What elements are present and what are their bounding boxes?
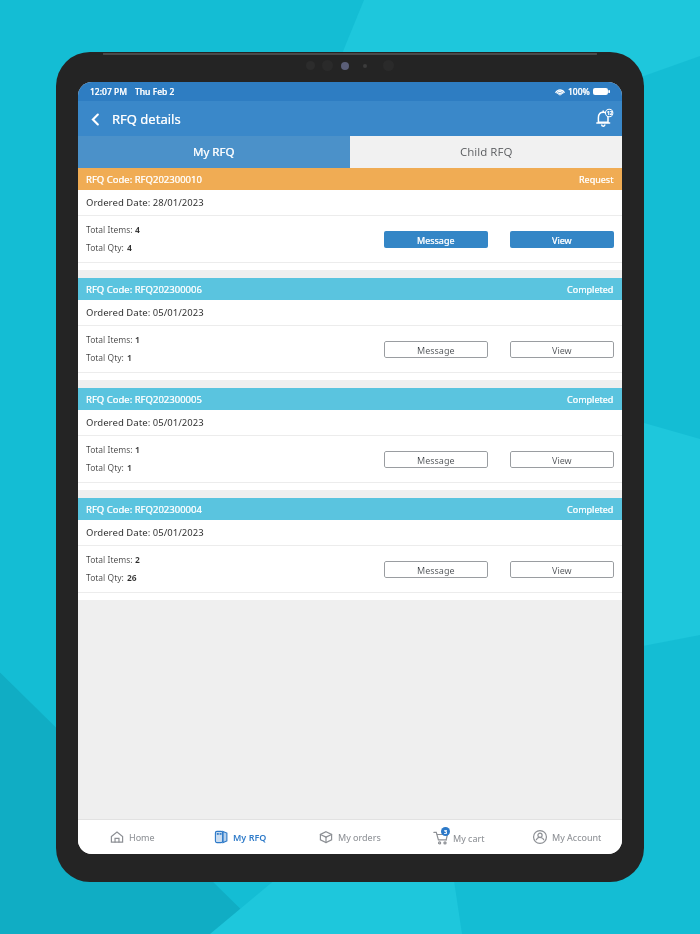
staticText: My RFQ (193, 144, 235, 160)
staticText: Ordered Date: 05/01/2023 (86, 526, 204, 539)
staticText: Message (417, 454, 455, 466)
staticText: 2 (135, 554, 140, 566)
button[interactable]: My orders (295, 820, 404, 854)
staticText: 1 (127, 352, 132, 364)
staticText: Message (417, 564, 455, 576)
staticText: 4 (135, 224, 140, 236)
staticText: Total Items: (86, 334, 135, 346)
button[interactable]: My RFQ (78, 136, 350, 168)
staticText: RFQ Code: RFQ202300005 (86, 393, 202, 406)
button[interactable]: View (510, 451, 614, 468)
staticText: 1 (135, 334, 140, 346)
staticText: RFQ Code: RFQ202300004 (86, 503, 202, 516)
staticText: Total Qty: (86, 242, 127, 254)
staticText: 12:07 PM (90, 86, 127, 98)
staticText: View (552, 234, 572, 246)
button[interactable]: Message (384, 341, 488, 358)
staticText: RFQ Code: RFQ202300006 (86, 283, 202, 296)
button[interactable]: My RFQ (186, 820, 295, 854)
staticText: My cart (453, 832, 485, 844)
button[interactable]: 3 (404, 820, 513, 854)
staticText: Total Qty: (86, 462, 127, 474)
button[interactable]: Home (78, 820, 186, 854)
button[interactable]: View (510, 341, 614, 358)
staticText: Child RFQ (460, 144, 513, 160)
staticText: Message (417, 234, 455, 246)
staticText: 1 (135, 444, 140, 456)
staticText: View (552, 454, 572, 466)
button[interactable]: Notifications (586, 101, 622, 136)
staticText: 12 (607, 110, 613, 117)
staticText: RFQ details (112, 110, 181, 128)
staticText: Total Items: (86, 444, 135, 456)
button[interactable]: Child RFQ (350, 136, 622, 168)
button[interactable]: Back (78, 102, 112, 136)
button[interactable]: Message (384, 451, 488, 468)
staticText: My RFQ (233, 831, 267, 843)
button[interactable]: My Account (513, 820, 622, 854)
button[interactable]: View (510, 561, 614, 578)
staticText: 3 (444, 828, 448, 835)
staticText: Thu Feb 2 (135, 86, 175, 98)
staticText: Total Items: (86, 554, 135, 566)
staticText: View (552, 564, 572, 576)
staticText: My orders (338, 831, 381, 843)
button[interactable]: Message (384, 231, 488, 248)
staticText: 100% (568, 86, 590, 98)
staticText: Completed (567, 393, 614, 405)
staticText: Ordered Date: 05/01/2023 (86, 306, 204, 319)
staticText: Total Qty: (86, 352, 127, 364)
staticText: Total Items: (86, 224, 135, 236)
staticText: RFQ Code: RFQ202300010 (86, 173, 202, 186)
staticText: Request (579, 173, 614, 185)
staticText: Ordered Date: 28/01/2023 (86, 196, 204, 209)
staticText: Completed (567, 503, 614, 515)
staticText: Completed (567, 283, 614, 295)
button[interactable]: Message (384, 561, 488, 578)
staticText: 26 (127, 572, 137, 584)
staticText: Home (129, 831, 155, 843)
staticText: View (552, 344, 572, 356)
button[interactable]: View (510, 231, 614, 248)
staticText: 1 (127, 462, 132, 474)
staticText: Total Qty: (86, 572, 127, 584)
staticText: My Account (552, 831, 602, 843)
staticText: Ordered Date: 05/01/2023 (86, 416, 204, 429)
staticText: Message (417, 344, 455, 356)
staticText: 4 (127, 242, 132, 254)
